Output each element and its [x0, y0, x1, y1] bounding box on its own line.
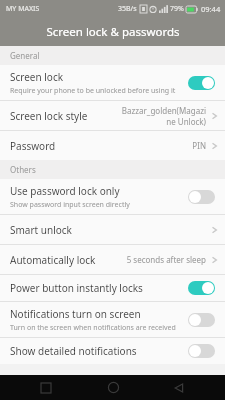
staticText: Require your phone to be unlocked before…	[10, 86, 176, 96]
button[interactable]: Password	[0, 131, 225, 160]
button[interactable]: Back	[159, 375, 199, 400]
staticText: 79%	[170, 4, 184, 14]
staticText: Screen lock & passwords	[46, 24, 180, 40]
button[interactable]: Smart unlock	[0, 215, 225, 244]
button[interactable]: On	[188, 281, 215, 295]
staticText: Power button instantly locks	[10, 281, 143, 295]
button[interactable]: Screen lock	[0, 65, 225, 100]
button[interactable]: Power button instantly locks	[0, 275, 225, 301]
staticText: Password	[10, 139, 146, 153]
staticText: 09:44	[201, 4, 221, 14]
staticText: Turn on the screen when notifications ar…	[10, 323, 176, 333]
staticText: 35B/s	[118, 4, 137, 14]
button[interactable]: Off	[188, 190, 215, 204]
staticText: Smart unlock	[10, 223, 210, 237]
button[interactable]: Notifications turn on screen	[0, 302, 225, 337]
button[interactable]: Off	[188, 313, 215, 327]
staticText: MY MAXIS	[6, 4, 40, 14]
button[interactable]: Show detailed notifications	[0, 338, 225, 364]
staticText: Others	[10, 164, 36, 175]
staticText: Screen lock	[10, 70, 64, 84]
staticText: Show password input screen directly	[10, 200, 130, 210]
staticText: Bazzar_golden(Magazine Unlock)	[120, 105, 206, 127]
staticText: Automatically lock	[10, 253, 114, 267]
button[interactable]: Use password lock only	[0, 179, 225, 214]
button[interactable]: Recent apps	[26, 375, 66, 400]
staticText: Screen lock style	[10, 109, 120, 123]
button[interactable]: On	[188, 76, 215, 90]
staticText: Use password lock only	[10, 184, 120, 198]
button[interactable]: Automatically lock	[0, 245, 225, 274]
button[interactable]: Home	[93, 375, 133, 400]
staticText: 5 seconds after sleep	[114, 254, 206, 265]
staticText: Notifications turn on screen	[10, 307, 141, 321]
button[interactable]: Screen lock style	[0, 101, 225, 130]
staticText: PIN	[146, 140, 206, 151]
staticText: Show detailed notifications	[10, 344, 137, 358]
staticText: General	[10, 50, 40, 61]
button[interactable]: Off	[188, 344, 215, 358]
